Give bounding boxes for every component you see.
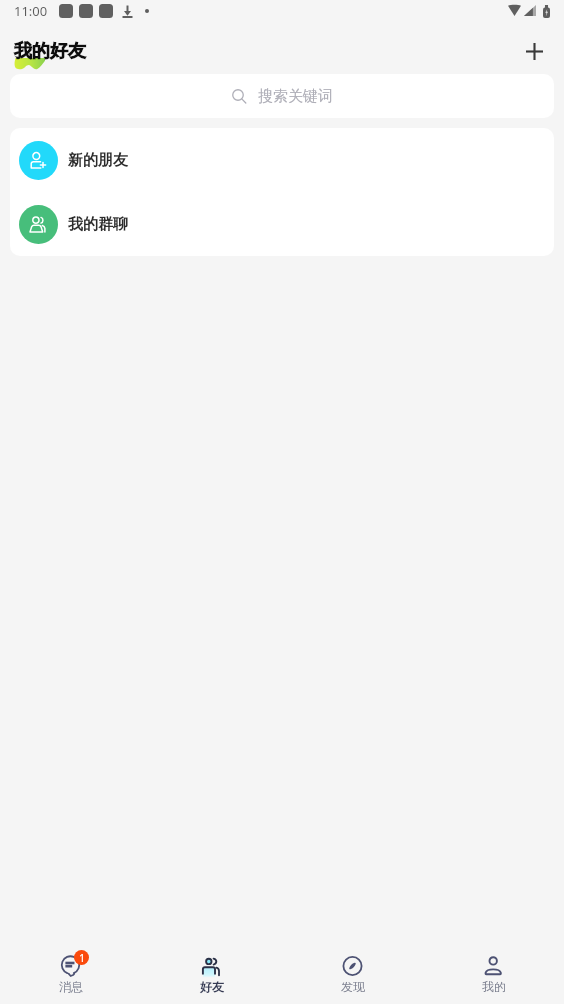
- button[interactable]: 我的群聊: [10, 192, 554, 256]
- staticText: 搜索关键词: [258, 87, 333, 106]
- button[interactable]: 发现: [282, 940, 423, 1004]
- staticText: 我的好友: [14, 40, 86, 63]
- staticText: 发现: [341, 979, 365, 994]
- button[interactable]: Add friend: [518, 35, 550, 67]
- button[interactable]: 新的朋友: [10, 128, 554, 192]
- staticText: 好友: [200, 979, 224, 994]
- button[interactable]: 我的: [423, 940, 564, 1004]
- button[interactable]: 搜索关键词: [10, 74, 554, 118]
- staticText: 新的朋友: [68, 151, 128, 170]
- staticText: 1: [79, 951, 85, 965]
- staticText: 消息: [59, 979, 83, 994]
- button[interactable]: 好友: [141, 940, 282, 1004]
- staticText: 11:00: [14, 2, 48, 20]
- button[interactable]: 1: [0, 940, 141, 1004]
- staticText: 我的群聊: [68, 215, 128, 234]
- staticText: 我的: [482, 979, 506, 994]
